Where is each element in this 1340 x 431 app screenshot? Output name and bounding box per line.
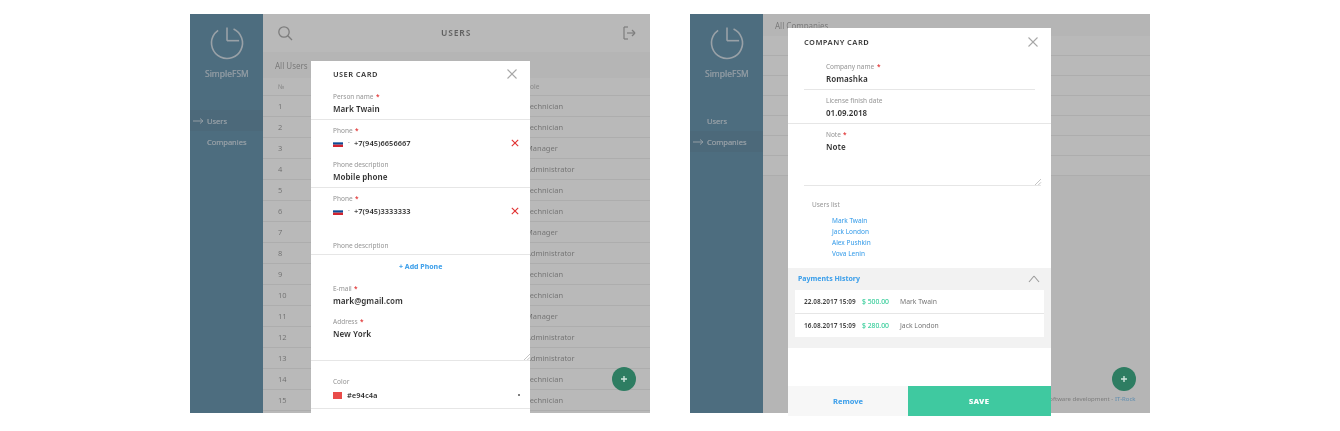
button[interactable]: Remove phone <box>510 138 520 148</box>
staticText: USER CARD <box>333 69 378 79</box>
staticText: Phone description <box>333 160 389 169</box>
staticText: All Companies <box>775 20 829 31</box>
staticText: Users <box>707 116 727 126</box>
staticText: 13 <box>278 353 287 363</box>
button[interactable]: Close <box>1025 34 1041 50</box>
staticText: Administrator <box>526 164 575 174</box>
button[interactable]: Jack London <box>788 226 1051 237</box>
staticText: USERS <box>441 27 472 39</box>
button[interactable]: Mark Twain <box>788 215 1051 226</box>
staticText: All Users <box>275 60 308 71</box>
staticText: Alex Pushkin <box>832 238 871 247</box>
staticText: 22.08.2017 15:09 <box>804 297 856 306</box>
button[interactable]: Alex Pushkin <box>788 237 1051 248</box>
button[interactable]: Logout <box>619 23 639 43</box>
staticText: Technician <box>526 374 564 384</box>
button[interactable]: SAVE <box>908 386 1051 416</box>
staticText: * <box>360 317 364 326</box>
staticText: 1 <box>278 101 283 111</box>
staticText: Person name <box>333 92 374 101</box>
button[interactable]: Add user <box>612 367 636 391</box>
staticText: Technician <box>526 269 564 279</box>
staticText: 3 <box>278 143 283 153</box>
staticText: Technician <box>526 185 564 195</box>
staticText: Administrator <box>526 248 575 258</box>
staticText: Technician <box>526 395 564 405</box>
staticText: SAVE <box>969 396 990 406</box>
button[interactable]: Search <box>274 22 296 44</box>
staticText: COMPANY CARD <box>804 37 870 47</box>
button[interactable]: Users <box>690 110 763 131</box>
staticText: Note <box>826 130 841 139</box>
button[interactable]: IT-Rock <box>1115 395 1136 403</box>
button[interactable]: Remove <box>788 386 908 416</box>
staticText: Companies <box>207 137 247 147</box>
staticText: Phone description <box>333 241 389 250</box>
staticText: Color <box>333 377 350 386</box>
staticText: 7 <box>278 227 283 237</box>
staticText: 10 <box>278 290 287 300</box>
staticText: $ 500.00 <box>862 297 889 306</box>
staticText: * <box>355 194 359 203</box>
staticText: * <box>354 284 358 293</box>
staticText: Address <box>333 317 358 326</box>
button[interactable]: Add company <box>1112 367 1136 391</box>
staticText: 11 <box>278 311 287 321</box>
staticText: * <box>877 62 881 71</box>
staticText: SimpleFSM <box>705 68 749 80</box>
staticText: Remove <box>833 396 864 406</box>
button[interactable]: Remove phone <box>510 206 520 216</box>
staticText: 8 <box>278 248 283 258</box>
staticText: № <box>278 82 285 91</box>
staticText: Technician <box>526 101 564 111</box>
button[interactable]: Close <box>504 66 520 82</box>
staticText: 15 <box>278 395 287 405</box>
staticText: Manager <box>526 227 558 237</box>
staticText: Manager <box>526 143 558 153</box>
staticText: Mobile phone <box>333 171 388 182</box>
button[interactable]: Payments History <box>788 268 1051 290</box>
staticText: 2 <box>278 122 283 132</box>
staticText: * <box>376 92 380 101</box>
staticText: Company name <box>826 62 875 71</box>
staticText: Payments History <box>798 274 860 284</box>
staticText: + Add Phone <box>399 262 443 272</box>
staticText: Mark Twain <box>900 297 937 306</box>
staticText: 4 <box>278 164 283 174</box>
staticText: Manager <box>526 311 558 321</box>
staticText: Technician <box>526 290 564 300</box>
staticText: Mark Twain <box>333 103 380 114</box>
staticText: 5 <box>278 185 283 195</box>
staticText: Users list <box>812 200 840 209</box>
staticText: mark@gmail.com <box>333 295 403 306</box>
staticText: Role <box>526 82 540 91</box>
staticText: Companies <box>707 137 747 147</box>
staticText: +7(945)3333333 <box>354 206 411 216</box>
button[interactable]: Companies <box>190 131 263 152</box>
staticText: #e94c4a <box>347 390 378 400</box>
staticText: License finish date <box>826 96 883 105</box>
staticText: Software development - <box>1046 395 1115 403</box>
staticText: Romashka <box>826 73 868 84</box>
staticText: Note <box>826 141 846 152</box>
staticText: Administrator <box>526 332 575 342</box>
button[interactable]: Companies <box>690 131 763 152</box>
staticText: · <box>348 138 350 148</box>
staticText: * <box>355 126 359 135</box>
staticText: 01.09.2018 <box>826 107 868 118</box>
button[interactable]: + Add Phone <box>311 255 530 278</box>
staticText: SimpleFSM <box>205 68 249 80</box>
staticText: Vova Lenin <box>832 249 865 258</box>
staticText: Phone <box>333 126 353 135</box>
staticText: New York <box>333 328 372 339</box>
button[interactable]: Users <box>190 110 263 131</box>
staticText: +7(945)6656667 <box>354 138 411 148</box>
staticText: Manager <box>526 411 558 413</box>
staticText: 12 <box>278 332 287 342</box>
button[interactable]: Vova Lenin <box>788 248 1051 259</box>
staticText: Jack London <box>900 321 939 330</box>
staticText: Technician <box>526 206 564 216</box>
staticText: Technician <box>526 122 564 132</box>
staticText: 14 <box>278 374 287 384</box>
